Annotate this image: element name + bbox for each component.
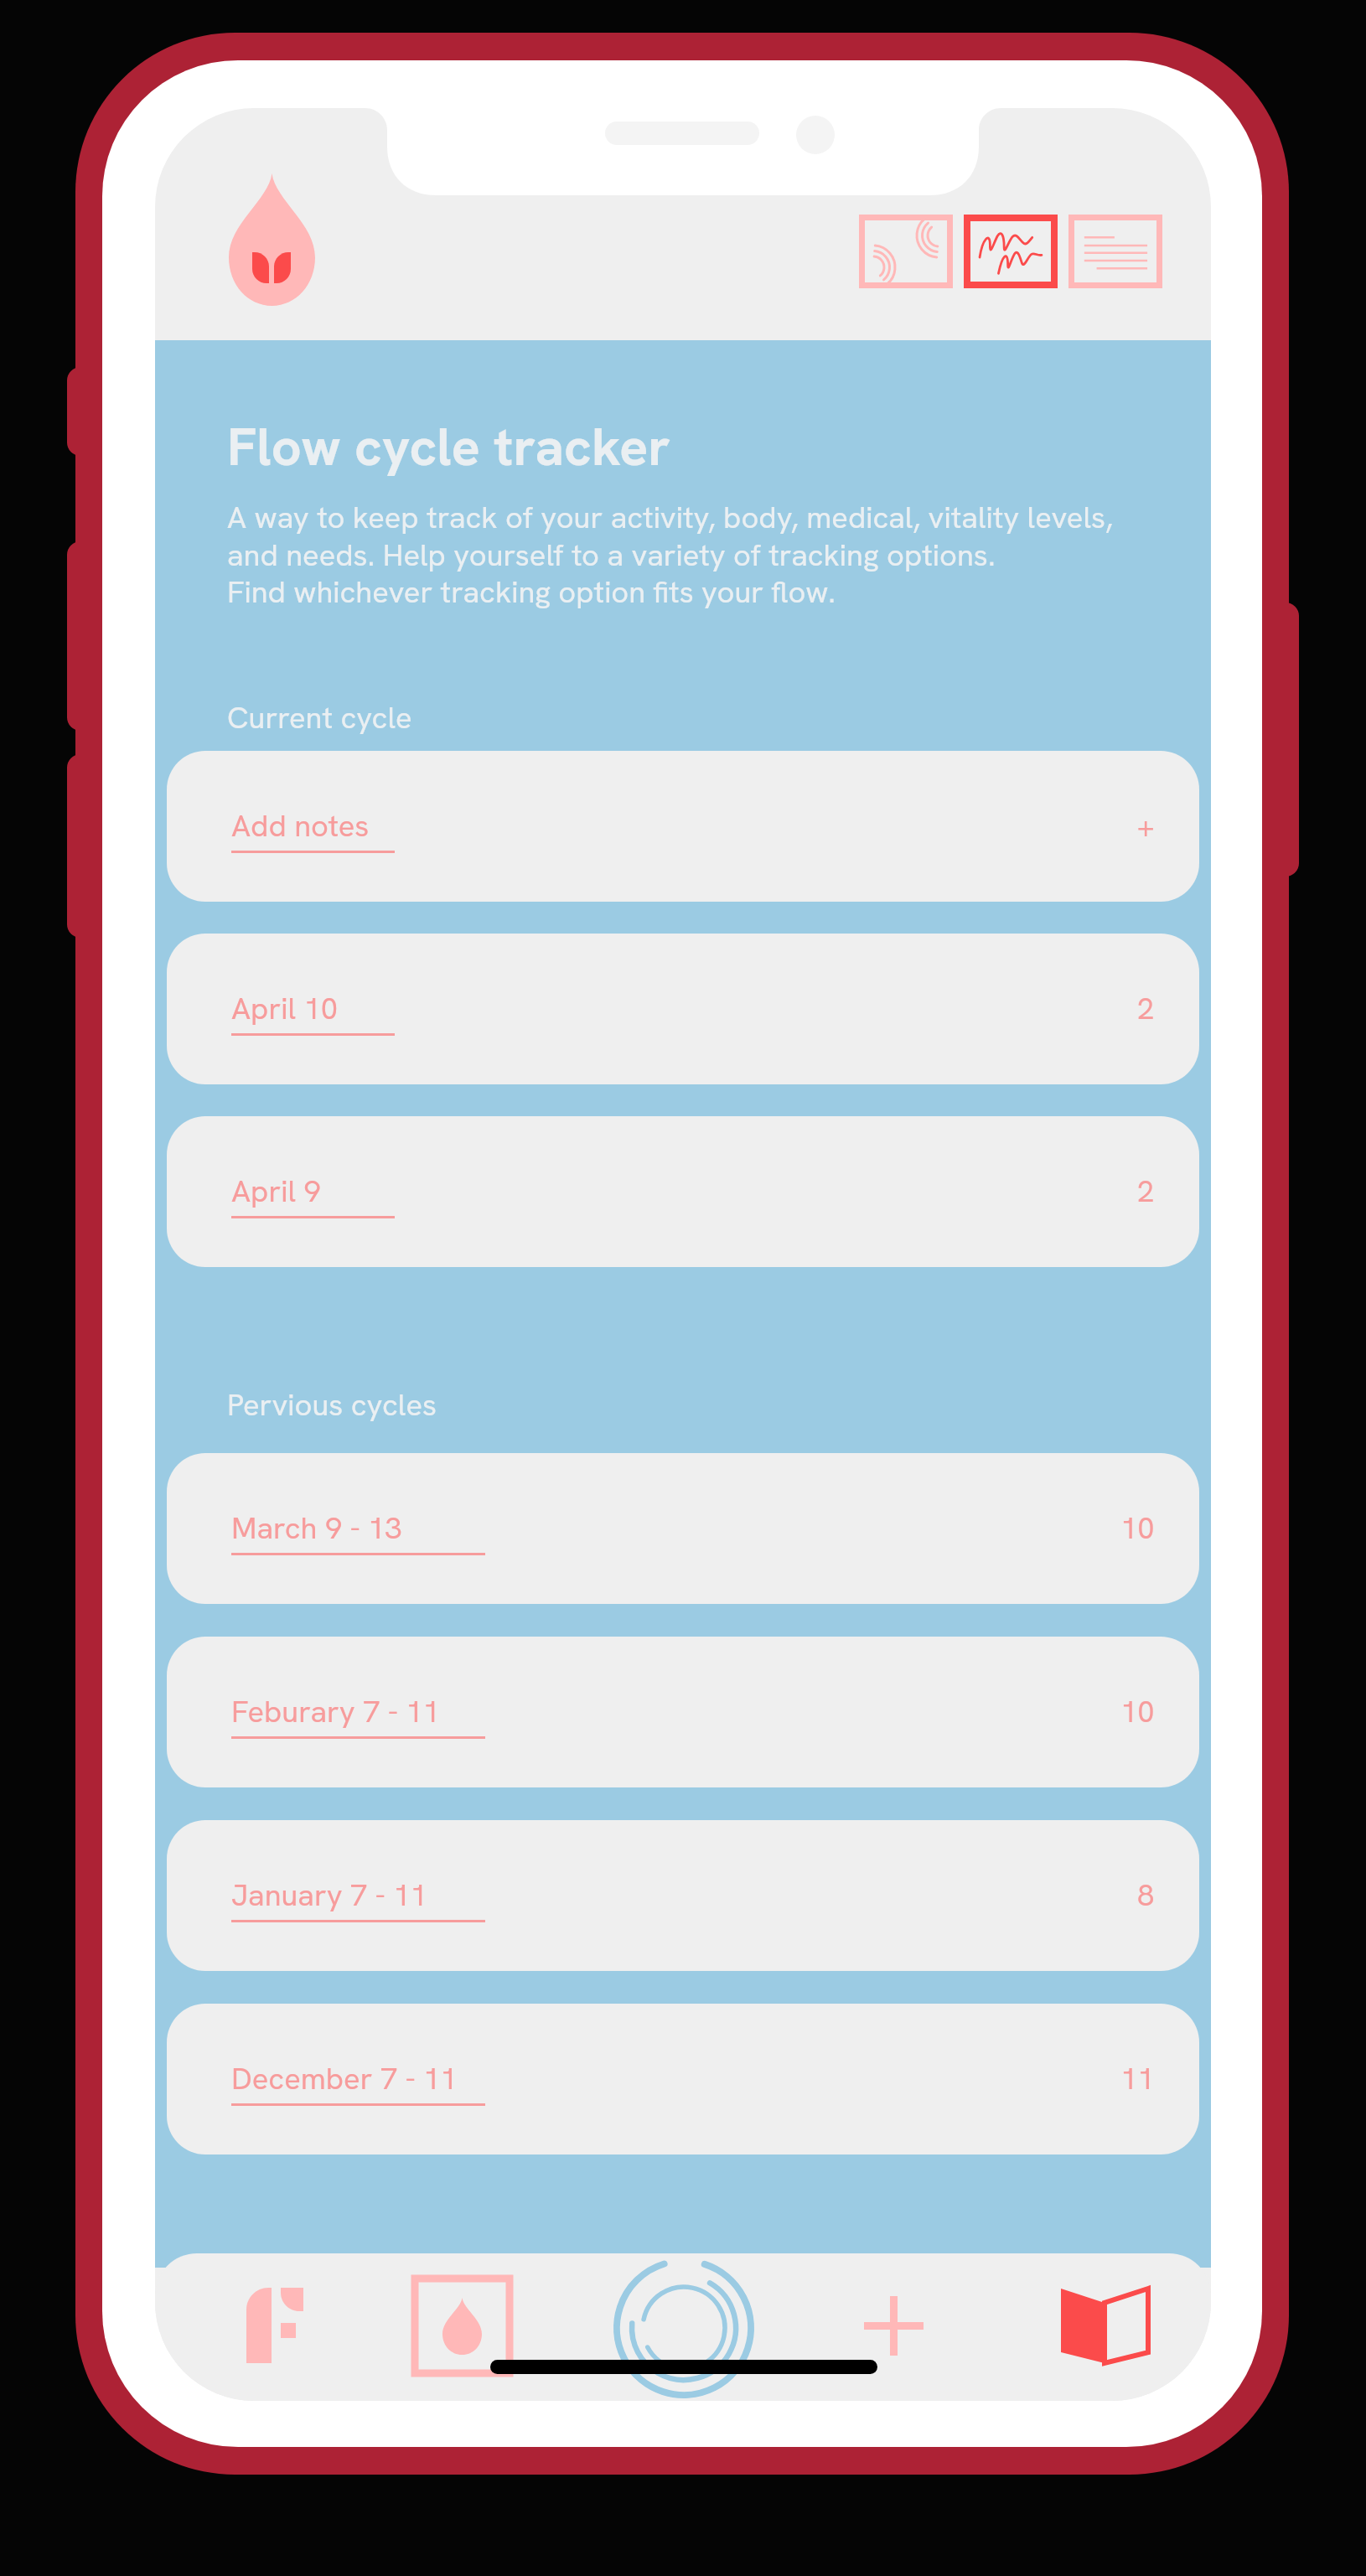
staticText: 8 (1137, 1875, 1155, 1915)
button[interactable]: December 7 - 11 (167, 2004, 1199, 2154)
staticText: December 7 - 11 (231, 2059, 458, 2098)
staticText: Flow cycle tracker (227, 412, 671, 481)
staticText: Current cycle (227, 698, 412, 737)
staticText: Add notes (231, 806, 370, 846)
button[interactable]: January 7 - 11 (167, 1820, 1199, 1971)
button[interactable]: Notes tracking (964, 215, 1058, 288)
button[interactable]: Home (246, 2288, 303, 2363)
staticText: 11 (1120, 2059, 1155, 2098)
staticText: April 9 (231, 1172, 321, 1211)
button[interactable]: Feburary 7 - 11 (167, 1637, 1199, 1787)
button[interactable]: Add notes (167, 751, 1199, 902)
staticText: March 9 - 13 (231, 1508, 402, 1548)
staticText: 2 (1137, 989, 1155, 1028)
staticText: 2 (1137, 1172, 1155, 1211)
button[interactable]: April 9 (167, 1116, 1199, 1267)
staticText: A way to keep track of your activity, bo… (227, 498, 1113, 612)
button[interactable]: Cycle (600, 2253, 768, 2392)
staticText: + (1137, 806, 1155, 846)
button[interactable]: Flow tracking (415, 2279, 510, 2373)
button[interactable]: March 9 - 13 (167, 1453, 1199, 1604)
button[interactable]: App logo (229, 173, 315, 306)
button[interactable]: Journal (1061, 2289, 1148, 2363)
staticText: Pervious cycles (227, 1385, 437, 1425)
button[interactable]: Sound tracking (859, 215, 953, 288)
staticText: January 7 - 11 (231, 1875, 427, 1915)
staticText: 10 (1120, 1508, 1155, 1548)
staticText: 10 (1120, 1692, 1155, 1731)
button[interactable]: April 10 (167, 934, 1199, 1084)
staticText: Feburary 7 - 11 (231, 1692, 440, 1731)
button[interactable]: Add entry (864, 2296, 924, 2356)
staticText: April 10 (231, 989, 339, 1028)
button[interactable]: Notes list (1068, 215, 1162, 288)
